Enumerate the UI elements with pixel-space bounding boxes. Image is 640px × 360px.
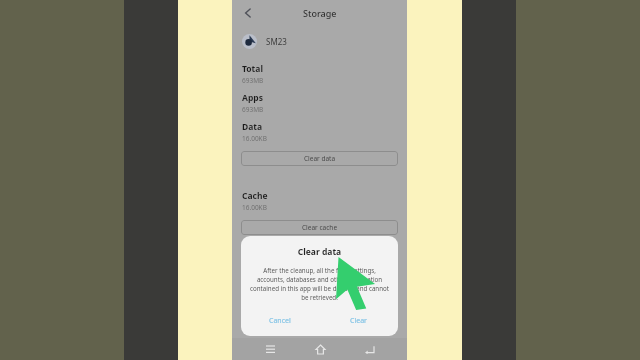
- button[interactable]: Back: [238, 3, 258, 23]
- staticText: Clear data: [304, 154, 336, 163]
- staticText: Total: [242, 63, 263, 75]
- staticText: Clear: [350, 316, 367, 326]
- button[interactable]: Clear data: [241, 151, 398, 166]
- staticText: 16.00: [300, 286, 344, 309]
- staticText: After the cleanup, all the files, settin…: [250, 266, 389, 302]
- staticText: 693MB: [242, 105, 264, 114]
- staticText: Cache: [242, 190, 268, 202]
- button[interactable]: SM23: [232, 26, 407, 56]
- staticText: 16.00KB: [242, 203, 267, 212]
- staticText: Data: [242, 121, 263, 133]
- button[interactable]: Back: [358, 338, 380, 360]
- staticText: Clear cache: [302, 223, 338, 232]
- button[interactable]: Home: [309, 338, 331, 360]
- staticText: Cach: [300, 251, 358, 284]
- button[interactable]: Apps: [232, 92, 407, 114]
- staticText: Apps: [300, 1, 359, 34]
- staticText: Apps: [242, 92, 263, 104]
- staticText: 16.00KB: [242, 134, 267, 143]
- button[interactable]: Data: [232, 121, 407, 143]
- button[interactable]: Cancel: [241, 312, 319, 330]
- button[interactable]: Cache: [232, 190, 407, 212]
- button[interactable]: Total: [232, 63, 407, 85]
- staticText: Clear data: [241, 246, 398, 258]
- staticText: 693MB: [242, 76, 264, 85]
- staticText: Cancel: [269, 316, 291, 326]
- staticText: SM23: [266, 36, 287, 47]
- staticText: Storage: [303, 7, 337, 19]
- button[interactable]: Recents: [259, 338, 281, 360]
- button[interactable]: Clear cache: [241, 220, 398, 235]
- button[interactable]: Clear: [319, 312, 398, 330]
